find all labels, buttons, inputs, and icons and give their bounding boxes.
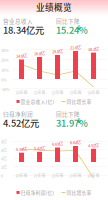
staticText: 21.6亿: [70, 45, 81, 50]
staticText: 同比增长率: [65, 98, 91, 105]
staticText: 4亿: [1, 156, 7, 162]
staticText: -10%: [1, 86, 10, 92]
staticText: 14.9亿: [16, 53, 27, 59]
staticText: 24年报: [87, 90, 99, 95]
staticText: 23年报: [69, 90, 81, 95]
staticText: 20%: [1, 57, 9, 63]
staticText: 4.52亿元: [3, 116, 39, 129]
staticText: 19.0亿: [52, 49, 63, 54]
staticText: 23年报: [69, 173, 81, 178]
staticText: 18.3亿: [88, 46, 99, 52]
staticText: 10%: [1, 67, 9, 73]
staticText: 22年报: [51, 173, 63, 178]
staticText: 5.19亿: [16, 146, 27, 152]
staticText: 营业总收入(亿): [19, 98, 54, 105]
staticText: 2亿: [1, 164, 7, 170]
staticText: 营业总收入: [3, 17, 33, 25]
staticText: 22年报: [51, 90, 63, 95]
staticText: 0%: [1, 77, 7, 83]
staticText: 5.42亿: [34, 145, 45, 151]
staticText: 15.24%: [56, 23, 88, 36]
staticText: 6亿: [1, 147, 7, 153]
staticText: 24年报: [87, 173, 99, 178]
staticText: 归母净利润(亿): [19, 189, 54, 196]
staticText: 20年报: [15, 173, 27, 178]
staticText: 6.63亿: [52, 141, 63, 147]
staticText: 30%: [1, 47, 9, 53]
staticText: 6.64亿: [70, 140, 81, 145]
staticText: 20年报: [15, 90, 27, 95]
staticText: 21年报: [33, 90, 45, 95]
staticText: 4.52亿: [88, 142, 99, 148]
staticText: 业绩概览: [36, 1, 72, 13]
staticText: 16.8亿: [34, 51, 45, 56]
staticText: 归母净利润: [3, 110, 33, 118]
staticText: 31.97%: [56, 116, 88, 129]
staticText: 21年报: [33, 173, 45, 178]
staticText: 同比增长率: [65, 189, 91, 196]
staticText: 0: [1, 173, 3, 179]
staticText: 18.34亿元: [3, 23, 44, 36]
staticText: 同比下降: [56, 110, 80, 118]
staticText: 同比下降: [56, 17, 80, 25]
staticText: 8亿: [1, 139, 7, 145]
